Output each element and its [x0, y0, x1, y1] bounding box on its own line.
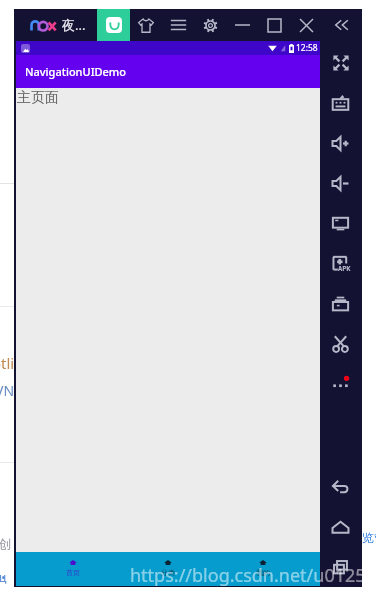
- button[interactable]: Menu: [166, 13, 190, 37]
- staticText: 12:58: [296, 42, 318, 54]
- button[interactable]: Back: [330, 476, 351, 497]
- button[interactable]: 夜...: [31, 15, 86, 35]
- staticText: https://blog.csdn.net/u012556114: [130, 563, 376, 588]
- button[interactable]: Collapse: [329, 13, 353, 37]
- staticText: 览管: [362, 530, 376, 545]
- button[interactable]: Shared folder: [330, 293, 351, 314]
- staticText: 创: [0, 536, 11, 552]
- staticText: 首页: [66, 568, 80, 577]
- button[interactable]: Keyboard: [330, 94, 351, 115]
- staticText: 主页面: [17, 89, 59, 107]
- button[interactable]: Install APK: [330, 253, 351, 274]
- button[interactable]: 分类: [120, 552, 215, 586]
- button[interactable]: Settings: [198, 13, 222, 37]
- button[interactable]: [97, 9, 130, 41]
- button[interactable]: Close: [294, 13, 318, 37]
- button[interactable]: 我的: [215, 552, 310, 586]
- button[interactable]: Fullscreen: [330, 52, 351, 73]
- button[interactable]: Maximize: [262, 13, 286, 37]
- staticText: 我的: [256, 568, 270, 577]
- staticText: APK: [338, 264, 351, 274]
- button[interactable]: Minimize: [230, 13, 254, 37]
- staticText: NavigationUIDemo: [25, 64, 127, 79]
- button[interactable]: More: [330, 372, 351, 393]
- button[interactable]: Skins: [134, 13, 158, 37]
- button[interactable]: Home: [330, 517, 351, 538]
- staticText: otli: [0, 353, 15, 373]
- button[interactable]: Volume up: [330, 133, 351, 154]
- staticText: 夜...: [62, 16, 86, 34]
- staticText: 分类: [161, 568, 175, 577]
- button[interactable]: Volume down: [330, 173, 351, 194]
- button[interactable]: 首页: [26, 552, 120, 586]
- button[interactable]: Cut: [330, 333, 351, 354]
- staticText: VN: [0, 381, 15, 400]
- button[interactable]: Recents: [330, 557, 351, 578]
- staticText: ц: [0, 569, 7, 585]
- button[interactable]: Screenshot: [330, 213, 351, 234]
